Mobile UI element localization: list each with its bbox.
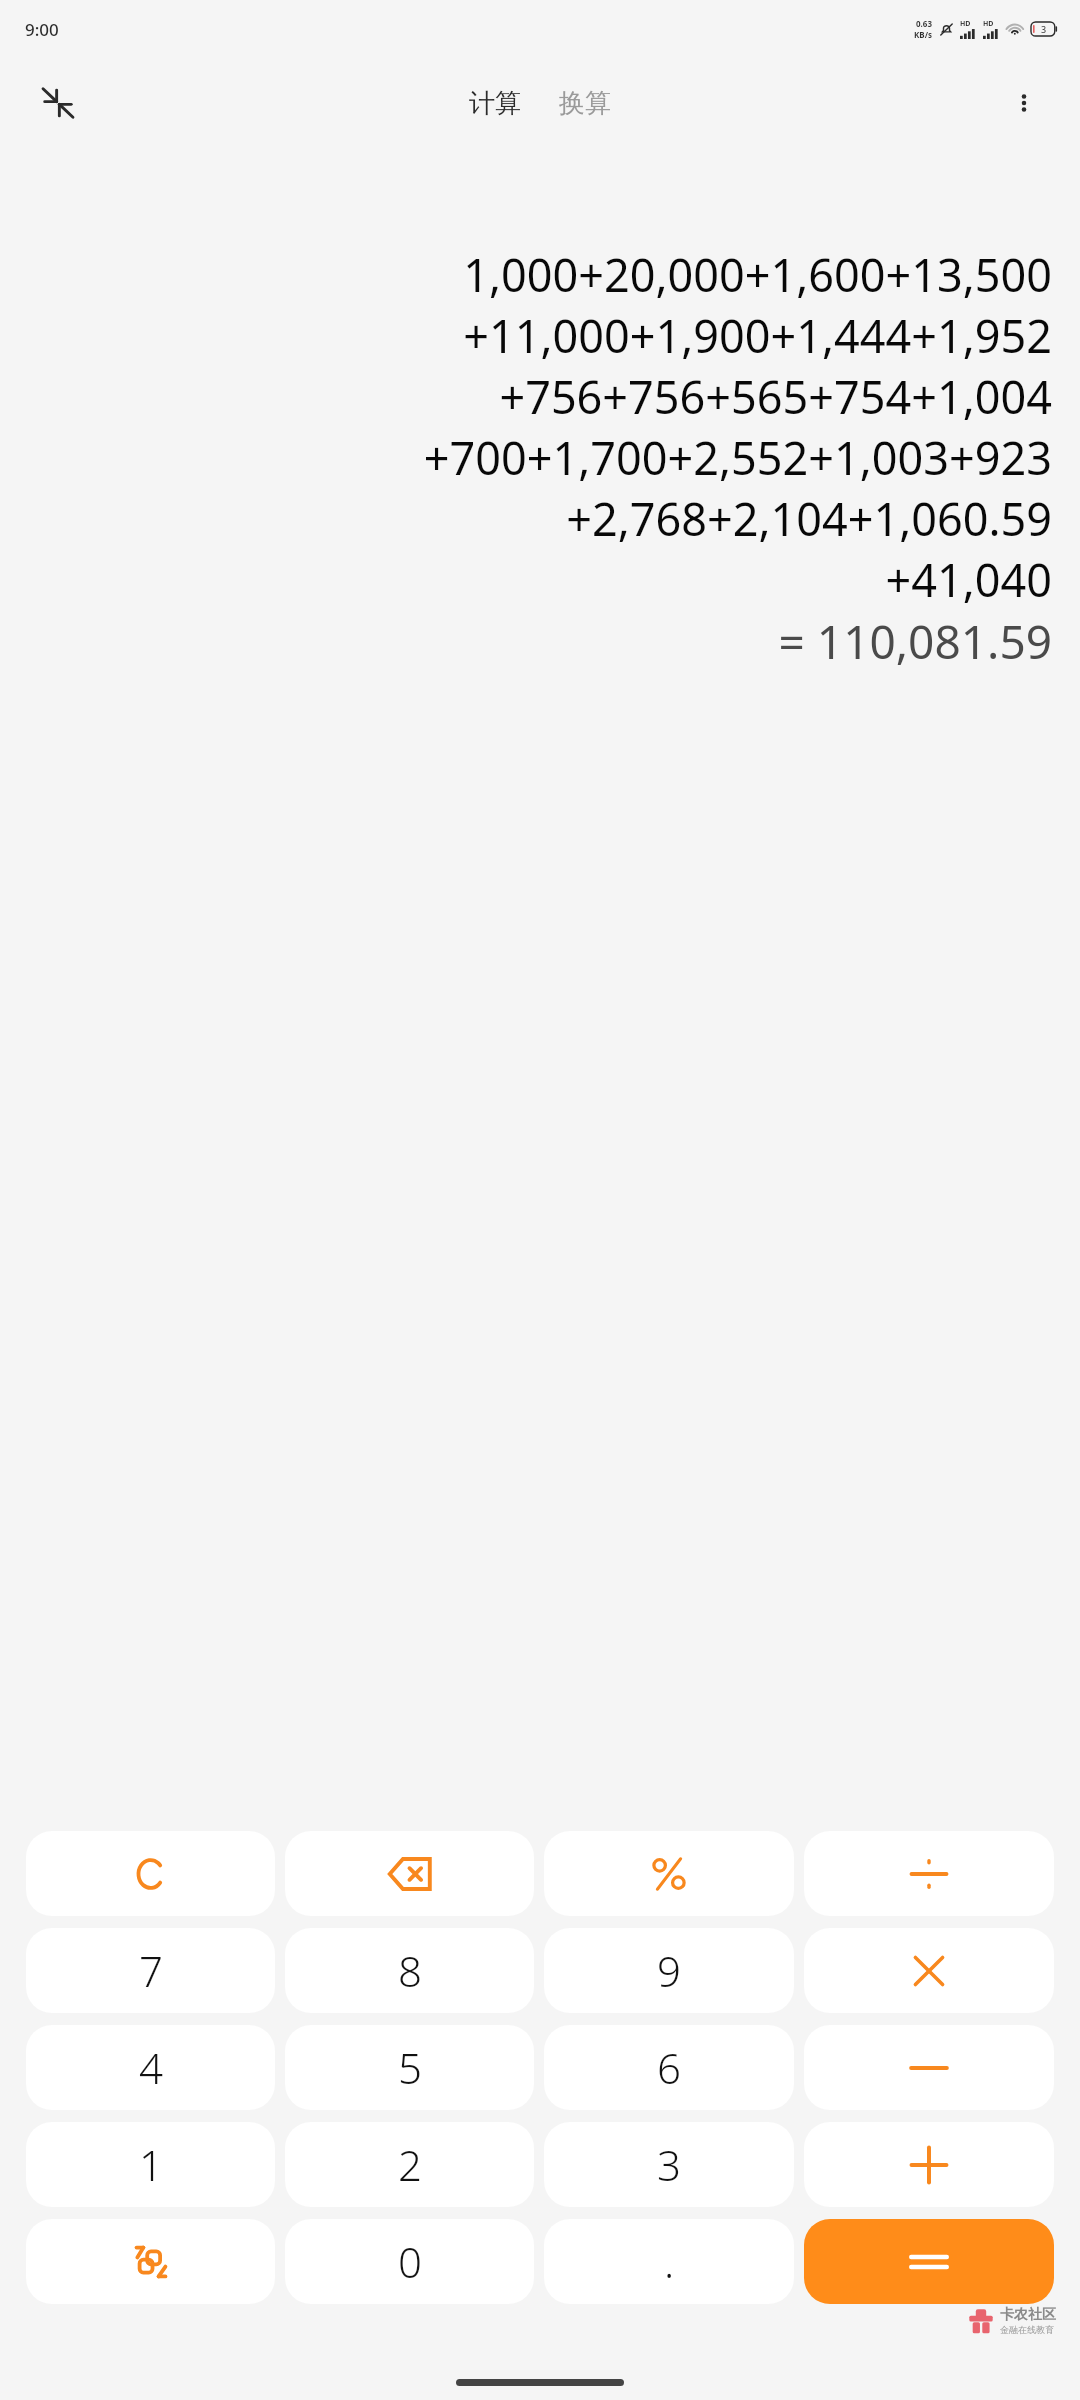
button[interactable]: Clear bbox=[26, 1831, 275, 1916]
staticText: 金融在线教育 bbox=[1000, 2324, 1054, 2335]
staticText: 9 bbox=[657, 1942, 681, 1999]
button[interactable]: Percent bbox=[544, 1831, 794, 1916]
staticText: 1 bbox=[139, 2136, 163, 2193]
staticText: 卡农社区 bbox=[1000, 2306, 1056, 2324]
button[interactable]: 4 bbox=[26, 2025, 275, 2110]
button[interactable]: 计算 bbox=[461, 81, 529, 126]
staticText: HD bbox=[983, 19, 994, 29]
button[interactable]: Backspace bbox=[285, 1831, 534, 1916]
button[interactable]: Equals bbox=[804, 2219, 1054, 2304]
button[interactable]: 6 bbox=[544, 2025, 794, 2110]
button[interactable]: 换算 bbox=[551, 81, 619, 126]
staticText: 1,000+20,000+1,600+13,500 bbox=[463, 244, 1052, 305]
button[interactable]: Plus bbox=[804, 2122, 1054, 2207]
button[interactable]: Collapse bbox=[30, 75, 86, 131]
staticText: 5 bbox=[398, 2039, 422, 2096]
button[interactable]: 9 bbox=[544, 1928, 794, 2013]
button[interactable]: Minus bbox=[804, 2025, 1054, 2110]
staticText: 8 bbox=[398, 1942, 422, 1999]
staticText: . bbox=[664, 2233, 675, 2290]
staticText: KB/s bbox=[914, 29, 932, 40]
staticText: 计算 bbox=[469, 87, 521, 120]
staticText: 3 bbox=[657, 2136, 681, 2193]
button[interactable]: Scientific mode bbox=[26, 2219, 275, 2304]
staticText: 0 bbox=[398, 2233, 422, 2290]
button[interactable]: More options bbox=[996, 75, 1052, 131]
button[interactable]: Multiply bbox=[804, 1928, 1054, 2013]
staticText: +11,000+1,900+1,444+1,952 bbox=[463, 305, 1052, 366]
staticText: 9:00 bbox=[25, 18, 59, 41]
button[interactable]: 8 bbox=[285, 1928, 534, 2013]
button[interactable]: 1 bbox=[26, 2122, 275, 2207]
staticText: 换算 bbox=[559, 87, 611, 120]
staticText: +41,040 bbox=[885, 549, 1052, 610]
staticText: = 110,081.59 bbox=[778, 610, 1052, 673]
button[interactable]: . bbox=[544, 2219, 794, 2304]
staticText: +700+1,700+2,552+1,003+923 bbox=[423, 427, 1052, 488]
staticText: 6 bbox=[657, 2039, 681, 2096]
staticText: 4 bbox=[139, 2039, 163, 2096]
staticText: +2,768+2,104+1,060.59 bbox=[566, 488, 1052, 549]
button[interactable]: 3 bbox=[544, 2122, 794, 2207]
staticText: 0.63 bbox=[916, 18, 932, 29]
button[interactable]: Divide bbox=[804, 1831, 1054, 1916]
button[interactable]: 0 bbox=[285, 2219, 534, 2304]
staticText: 7 bbox=[139, 1942, 163, 1999]
staticText: 2 bbox=[398, 2136, 422, 2193]
button[interactable]: 5 bbox=[285, 2025, 534, 2110]
staticText: 3 bbox=[1041, 23, 1047, 35]
button[interactable]: 7 bbox=[26, 1928, 275, 2013]
button[interactable]: 2 bbox=[285, 2122, 534, 2207]
staticText: +756+756+565+754+1,004 bbox=[499, 366, 1052, 427]
staticText: HD bbox=[960, 19, 971, 29]
